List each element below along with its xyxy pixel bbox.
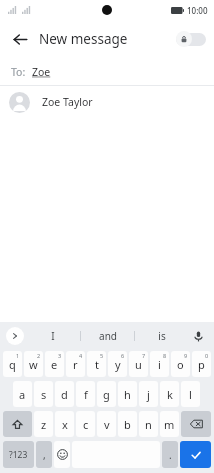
staticText: o <box>177 357 184 372</box>
staticText: 10:00 <box>187 5 208 16</box>
staticText: z <box>41 417 47 432</box>
button[interactable]: Emoji <box>54 441 70 468</box>
staticText: x <box>62 417 68 432</box>
button[interactable]: g <box>97 381 116 407</box>
button[interactable]: d <box>55 381 74 407</box>
button[interactable]: u <box>129 351 148 377</box>
button[interactable]: w <box>24 351 43 377</box>
button[interactable]: More suggestions <box>6 327 24 345</box>
staticText: i <box>158 357 161 372</box>
button[interactable]: v <box>97 411 116 437</box>
staticText: 3 <box>58 352 62 359</box>
staticText: and <box>99 329 117 343</box>
button[interactable]: Comma <box>36 441 52 468</box>
button[interactable]: I <box>26 322 80 349</box>
staticText: a <box>19 387 26 402</box>
staticText: f <box>84 387 88 402</box>
button[interactable]: y <box>108 351 127 377</box>
button[interactable]: z <box>34 411 53 437</box>
staticText: 6 <box>121 352 125 359</box>
button[interactable]: q <box>3 351 22 377</box>
staticText: ?123 <box>9 449 28 461</box>
button[interactable]: a <box>13 381 32 407</box>
staticText: m <box>164 417 175 432</box>
staticText: 5 <box>100 352 104 359</box>
staticText: is <box>158 329 166 343</box>
staticText: k <box>167 387 173 402</box>
staticText: j <box>147 387 150 402</box>
staticText: r <box>73 357 78 372</box>
staticText: g <box>103 387 110 402</box>
staticText: y <box>115 357 121 372</box>
staticText: 9 <box>184 352 188 359</box>
button[interactable]: ?123 <box>3 441 34 468</box>
button[interactable]: n <box>139 411 158 437</box>
button[interactable]: To: <box>0 58 214 85</box>
button[interactable]: s <box>34 381 53 407</box>
button[interactable]: e <box>45 351 64 377</box>
staticText: 0 <box>205 352 209 359</box>
button[interactable]: Back <box>6 25 34 53</box>
staticText: To: <box>11 65 26 79</box>
staticText: l <box>189 387 192 402</box>
button[interactable]: k <box>160 381 179 407</box>
button[interactable]: Zoe Taylor <box>0 86 214 118</box>
staticText: h <box>124 387 131 402</box>
button[interactable]: r <box>66 351 85 377</box>
button[interactable]: j <box>139 381 158 407</box>
staticText: c <box>83 417 89 432</box>
staticText: 1 <box>16 352 20 359</box>
button[interactable]: l <box>181 381 200 407</box>
staticText: q <box>9 357 16 372</box>
staticText: b <box>124 417 131 432</box>
staticText: 8 <box>163 352 167 359</box>
button[interactable]: and <box>81 322 134 349</box>
staticText: 4 <box>79 352 83 359</box>
button[interactable]: c <box>76 411 95 437</box>
staticText: v <box>104 417 110 432</box>
button[interactable]: x <box>55 411 74 437</box>
button[interactable]: Encryption toggle <box>176 30 206 48</box>
button[interactable]: Backspace <box>181 411 211 437</box>
staticText: 2 <box>37 352 41 359</box>
button[interactable]: b <box>118 411 137 437</box>
staticText: , <box>43 448 46 462</box>
button[interactable]: h <box>118 381 137 407</box>
staticText: d <box>61 387 68 402</box>
button[interactable]: Period <box>162 441 178 468</box>
button[interactable]: i <box>150 351 169 377</box>
button[interactable]: p <box>192 351 211 377</box>
staticText: u <box>135 357 142 372</box>
staticText: t <box>95 357 99 372</box>
staticText: . <box>169 448 172 462</box>
staticText: e <box>51 357 58 372</box>
staticText: p <box>198 357 205 372</box>
staticText: New message <box>39 30 128 48</box>
button[interactable]: is <box>135 322 188 349</box>
button[interactable]: m <box>160 411 179 437</box>
staticText: I <box>51 329 55 343</box>
staticText: Zoe <box>32 65 51 79</box>
button[interactable]: Shift <box>3 411 32 437</box>
staticText: s <box>41 387 47 402</box>
staticText: w <box>29 357 38 372</box>
staticText: 7 <box>142 352 146 359</box>
staticText: n <box>145 417 152 432</box>
button[interactable]: t <box>87 351 106 377</box>
button[interactable]: Voice input <box>189 327 207 345</box>
button[interactable]: f <box>76 381 95 407</box>
button[interactable]: Send <box>180 441 211 468</box>
button[interactable]: o <box>171 351 190 377</box>
staticText: Zoe Taylor <box>42 95 93 109</box>
